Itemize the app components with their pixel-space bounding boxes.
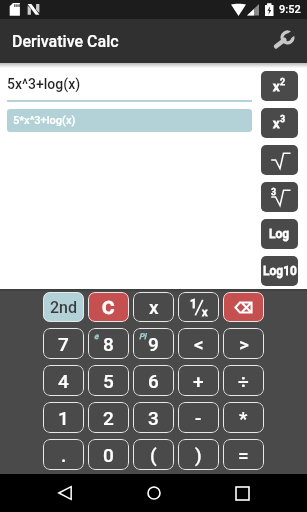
staticText: 6 [148,370,159,392]
staticText: 3 [271,187,277,198]
button[interactable]: Backspace [223,292,264,322]
staticText: x [202,306,208,319]
button[interactable] [261,145,298,175]
button[interactable]: 5 [88,365,129,396]
staticText: 8 [103,333,114,355]
staticText: 3 [280,114,286,125]
button[interactable]: 2 [88,402,129,433]
button[interactable]: 4 [43,365,84,396]
button[interactable]: 6 [133,365,174,396]
staticText: Log [269,227,290,241]
staticText: 4 [58,370,69,392]
button[interactable]: < [178,328,219,359]
button[interactable]: 3 [261,182,298,212]
button[interactable]: x [261,71,298,101]
button[interactable]: Log10 [261,256,298,286]
staticText: * [239,407,248,429]
staticText: 5*x^3+log(x) [13,114,76,127]
staticText: C [102,296,115,318]
staticText: e [94,332,99,341]
button[interactable]: ) [178,439,219,470]
button[interactable]: C [88,292,129,322]
staticText: x [273,116,280,131]
staticText: 5 [103,370,114,392]
staticText: Log10 [263,264,297,278]
staticText: Pi [139,332,147,341]
staticText: x [149,296,159,318]
button[interactable]: + [178,365,219,396]
button[interactable]: 7 [43,328,84,359]
other: Backspace [234,301,253,314]
staticText: 1 [58,407,69,429]
staticText: 9:52 [279,3,301,16]
staticText: ) [195,444,202,466]
button[interactable]: 0 [88,439,129,470]
staticText: 9 [148,333,159,355]
button[interactable]: Log [261,219,298,249]
staticText: - [195,407,202,429]
button[interactable]: * [223,402,264,433]
staticText: x [273,79,280,94]
staticText: + [193,370,204,392]
staticText: 2 [103,407,114,429]
button[interactable]: 1 [43,402,84,433]
staticText: = [238,444,249,466]
staticText: 2 [280,77,286,88]
staticText: ( [150,444,157,466]
button[interactable]: 1 [178,292,219,322]
button[interactable]: 2nd [43,292,84,322]
staticText: 2nd [50,298,78,317]
button[interactable]: Pi [133,328,174,359]
button[interactable]: x [133,292,174,322]
staticText: 3 [148,407,159,429]
staticText: < [194,333,204,355]
button[interactable]: > [223,328,264,359]
staticText: 7 [58,333,69,355]
button[interactable]: 3 [133,402,174,433]
button[interactable]: e [88,328,129,359]
staticText: > [239,333,249,355]
button[interactable]: ÷ [223,365,264,396]
staticText: 1 [190,297,197,311]
button[interactable]: x [261,108,298,138]
button[interactable]: . [43,439,84,470]
button[interactable]: Home [130,474,178,512]
button[interactable]: Recents [218,474,266,512]
staticText: 0 [103,444,114,466]
staticText: . [61,444,67,466]
staticText: 5x^3+log(x) [7,76,81,92]
staticText: Derivative Calc [12,32,119,51]
button[interactable]: - [178,402,219,433]
staticText: ÷ [238,370,249,392]
button[interactable]: Back [41,474,89,512]
button[interactable]: = [223,439,264,470]
button[interactable]: Settings [270,28,296,54]
button[interactable]: ( [133,439,174,470]
